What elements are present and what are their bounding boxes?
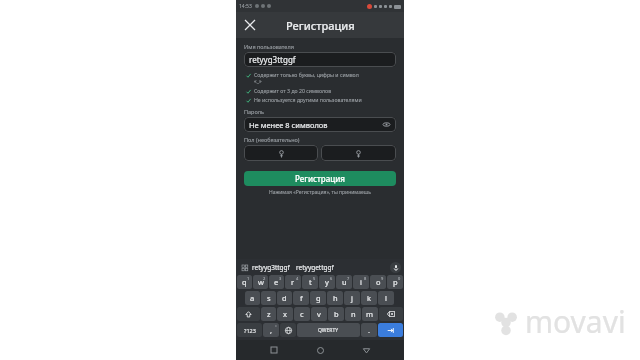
staticText: h <box>333 293 338 303</box>
staticText: b <box>334 309 339 319</box>
staticText: ?123 <box>244 327 256 334</box>
staticText: p <box>393 277 398 287</box>
button[interactable]: Back <box>358 342 374 358</box>
button[interactable]: h <box>327 291 343 305</box>
staticText: j <box>351 293 353 303</box>
button[interactable]: o <box>370 275 386 289</box>
button[interactable]: Female <box>321 145 396 161</box>
staticText: t <box>309 277 312 287</box>
button[interactable]: Voice input <box>390 262 401 273</box>
staticText: z <box>267 309 271 319</box>
staticText: ° <box>275 324 277 329</box>
staticText: 14:53 <box>239 3 252 10</box>
button[interactable]: v <box>311 307 327 321</box>
button[interactable]: q <box>237 275 252 289</box>
button[interactable]: Key <box>280 323 296 337</box>
staticText: Содержит от 3 до 20 символов <box>254 87 332 94</box>
staticText: g <box>316 293 321 303</box>
button[interactable]: p <box>387 275 403 289</box>
button[interactable]: x <box>277 307 293 321</box>
button[interactable]: , <box>263 323 279 337</box>
staticText: w <box>258 277 264 287</box>
staticText: 7 <box>347 276 350 281</box>
button[interactable]: Содержит от 3 до 20 символов <box>244 87 396 94</box>
button[interactable]: Male <box>244 145 318 161</box>
staticText: i <box>360 277 362 287</box>
button[interactable]: d <box>277 291 292 305</box>
button[interactable]: g <box>310 291 326 305</box>
button[interactable]: Key <box>379 307 403 321</box>
button[interactable]: Show password <box>382 120 391 129</box>
button[interactable]: u <box>336 275 352 289</box>
staticText: Содержит только буквы, цифры и символ «_… <box>254 71 359 85</box>
button[interactable]: t <box>302 275 318 289</box>
button[interactable]: a <box>245 291 260 305</box>
staticText: retyyg3ttggf <box>249 54 296 65</box>
button[interactable]: k <box>361 291 377 305</box>
button[interactable]: y <box>319 275 335 289</box>
staticText: 3 <box>279 276 282 281</box>
staticText: d <box>282 293 287 303</box>
button[interactable]: b <box>328 307 344 321</box>
button[interactable]: ?123 <box>237 323 262 337</box>
staticText: v <box>317 309 321 319</box>
staticText: k <box>367 293 372 303</box>
staticText: movavi <box>525 301 626 342</box>
staticText: Регистрация <box>295 173 346 184</box>
button[interactable]: r <box>285 275 301 289</box>
button[interactable]: retyyg3ttggf <box>252 263 290 272</box>
button[interactable]: l <box>378 291 394 305</box>
button[interactable]: Регистрация <box>244 171 396 186</box>
button[interactable]: z <box>261 307 276 321</box>
button[interactable]: retyyg3ttggf <box>244 52 396 67</box>
staticText: f <box>300 293 303 303</box>
button[interactable]: Enter <box>378 323 403 337</box>
button[interactable]: f <box>293 291 309 305</box>
staticText: 1 <box>247 276 250 281</box>
staticText: 9 <box>381 276 384 281</box>
staticText: 5 <box>313 276 316 281</box>
button[interactable]: . <box>361 323 377 337</box>
button[interactable]: Home <box>312 342 328 358</box>
staticText: s <box>267 293 271 303</box>
staticText: Регистрация <box>286 18 355 33</box>
button[interactable]: Не менее 8 символов <box>244 117 396 132</box>
staticText: QWERTY <box>318 327 339 334</box>
staticText: Имя пользователя <box>244 43 294 50</box>
button[interactable]: retyygettggf <box>296 263 334 272</box>
button[interactable]: Содержит только буквы, цифры и символ «_… <box>244 71 396 85</box>
staticText: Не используется другими пользователями <box>254 96 362 103</box>
button[interactable]: Key <box>237 307 260 321</box>
button[interactable]: Close <box>241 16 259 34</box>
button[interactable]: j <box>344 291 360 305</box>
staticText: , <box>270 325 273 335</box>
button[interactable]: QWERTY <box>297 323 360 337</box>
button[interactable]: n <box>345 307 361 321</box>
button[interactable]: w <box>253 275 268 289</box>
staticText: e <box>274 277 279 287</box>
staticText: Пол (необязательно) <box>244 136 300 143</box>
staticText: . <box>368 325 371 335</box>
staticText: n <box>351 309 356 319</box>
staticText: Нажимая «Регистрация», ты принимаешь <box>244 189 396 196</box>
staticText: 4 <box>296 276 299 281</box>
staticText: o <box>376 277 381 287</box>
staticText: a <box>250 293 255 303</box>
staticText: Не менее 8 символов <box>249 120 328 130</box>
staticText: 6 <box>330 276 333 281</box>
button[interactable]: i <box>353 275 369 289</box>
button[interactable]: Recents <box>266 342 282 358</box>
button[interactable]: s <box>261 291 276 305</box>
button[interactable]: Не используется другими пользователями <box>244 96 396 103</box>
staticText: y <box>325 277 329 287</box>
button[interactable]: e <box>269 275 284 289</box>
button[interactable]: Clipboard <box>239 262 250 273</box>
staticText: q <box>242 277 247 287</box>
button[interactable]: m <box>362 307 378 321</box>
staticText: 2 <box>263 276 266 281</box>
button[interactable]: c <box>294 307 310 321</box>
staticText: 8 <box>364 276 367 281</box>
staticText: r <box>291 277 295 287</box>
staticText: m <box>366 309 374 319</box>
staticText: c <box>300 309 304 319</box>
